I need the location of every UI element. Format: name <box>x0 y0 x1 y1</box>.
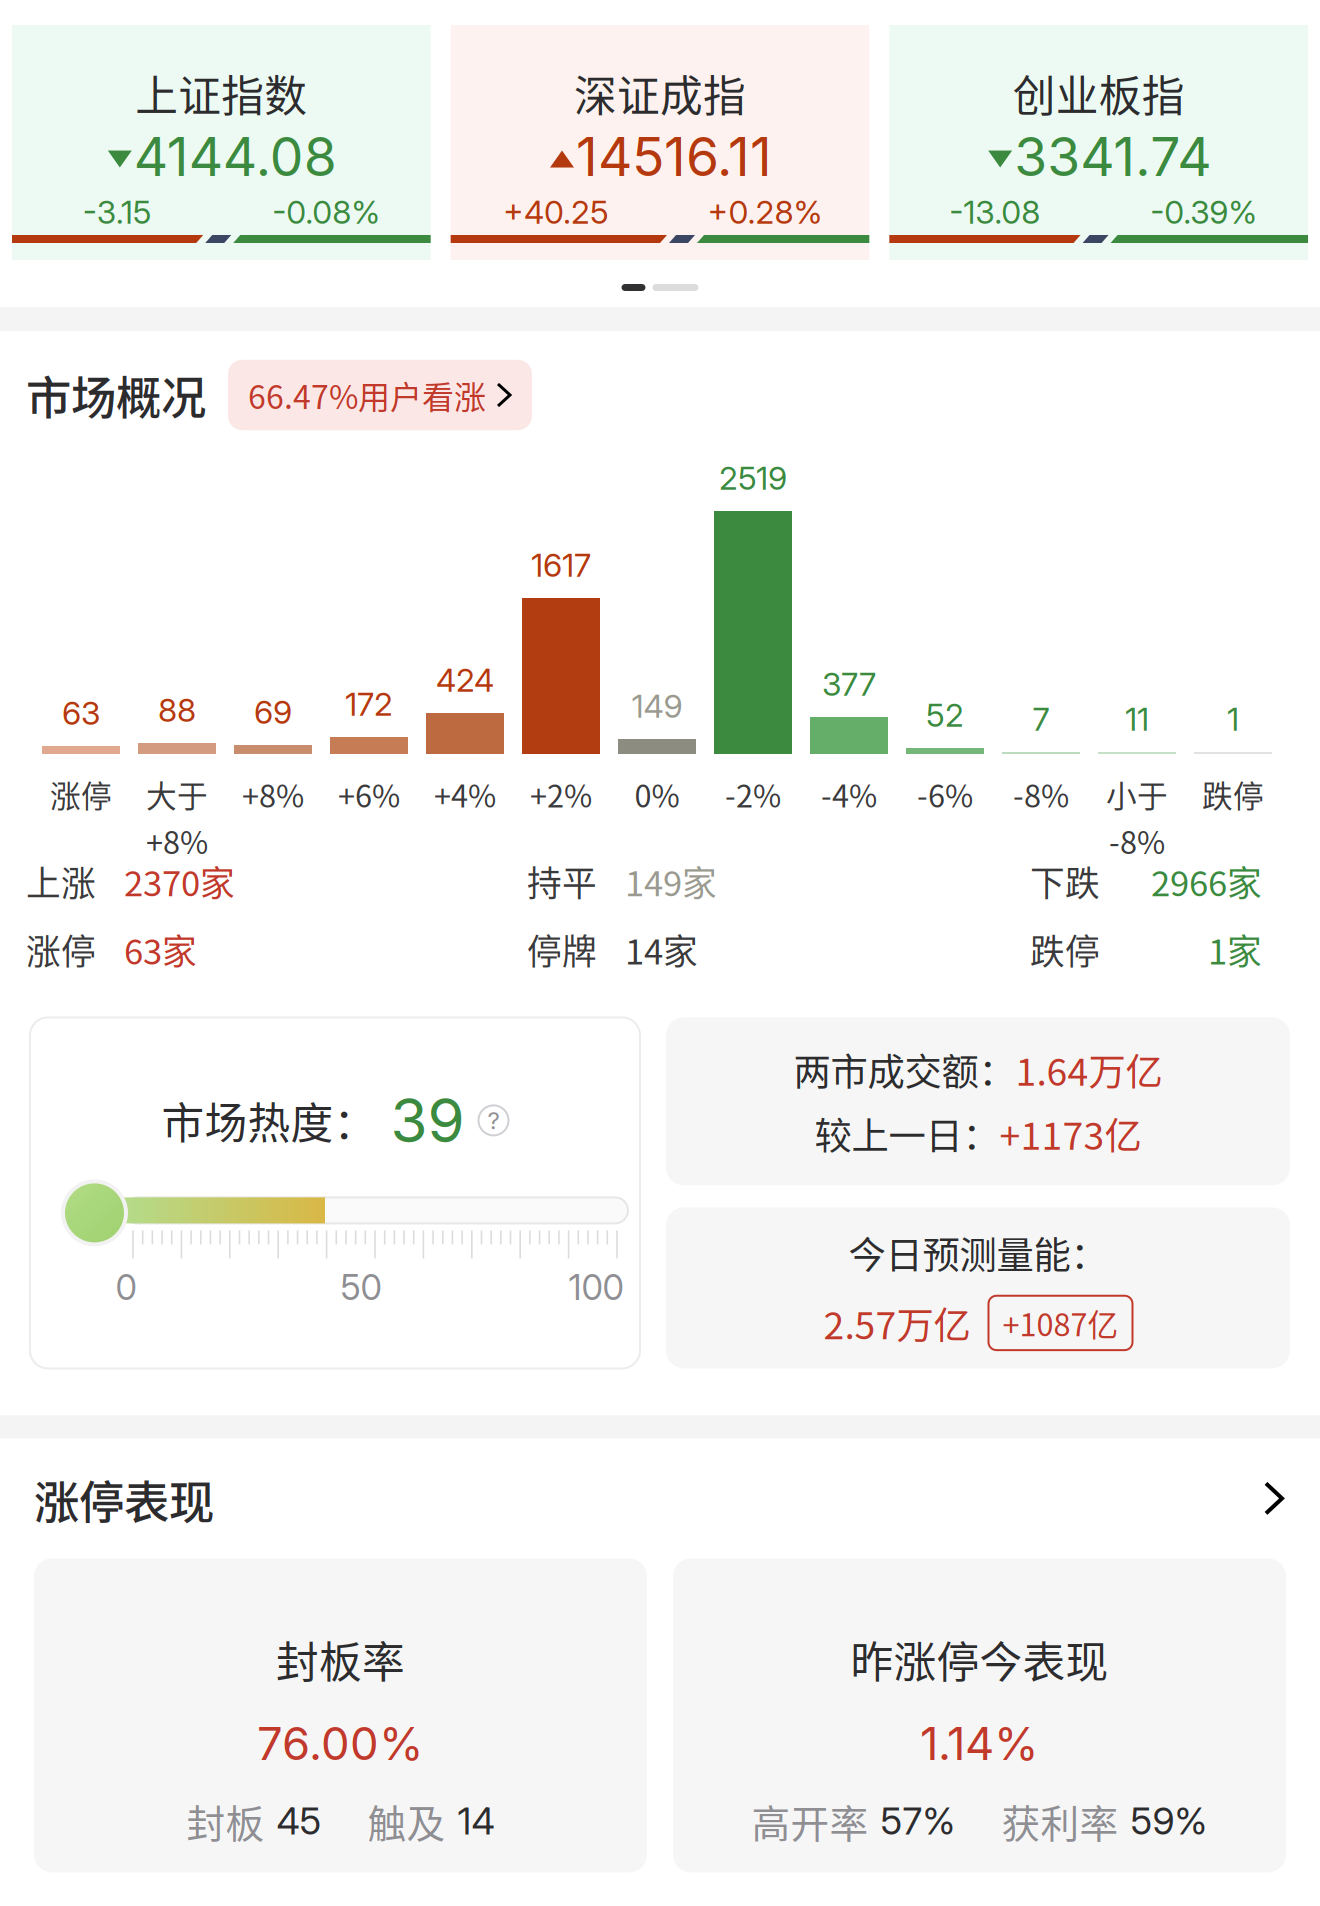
button[interactable]: 创业板指 <box>889 25 1308 260</box>
staticText: 76.00% <box>257 1716 424 1771</box>
staticText: 63家 <box>124 924 197 974</box>
staticText: 3341.74 <box>1014 124 1211 189</box>
staticText: 69 <box>254 693 292 731</box>
staticText: -8% <box>1109 818 1165 863</box>
staticText: -13.08 <box>949 193 1040 231</box>
button[interactable]: 上证指数 <box>12 25 431 260</box>
staticText: 持平 <box>527 856 597 906</box>
staticText: 较上一日： <box>814 1106 999 1160</box>
staticText: 45 <box>276 1798 321 1844</box>
staticText: -4% <box>821 772 877 816</box>
staticText: 涨停表现 <box>34 1467 214 1532</box>
staticText: 涨停 <box>50 772 112 816</box>
staticText: 1家 <box>1208 924 1262 974</box>
staticText: 封板率 <box>276 1628 405 1690</box>
staticText: -0.39% <box>1150 193 1257 231</box>
staticText: -3.15 <box>83 193 152 231</box>
staticText: 昨涨停今表现 <box>850 1628 1108 1690</box>
staticText: 获利率 <box>1001 1793 1118 1849</box>
staticText: 59% <box>1130 1798 1207 1844</box>
button[interactable]: 昨涨停今表现 <box>673 1558 1286 1872</box>
staticText: +4% <box>434 772 496 816</box>
staticText: 52 <box>926 696 964 734</box>
staticText: 39 <box>390 1084 464 1157</box>
staticText: 触及 <box>367 1793 445 1849</box>
staticText: 1.64万亿 <box>1015 1042 1162 1096</box>
button[interactable]: 66.47%用户看涨 <box>228 360 532 430</box>
staticText: +8% <box>242 772 304 816</box>
staticText: 50 <box>340 1266 381 1308</box>
staticText: -6% <box>917 772 973 816</box>
button[interactable]: 封板率 <box>34 1558 647 1872</box>
staticText: 创业板指 <box>1013 62 1185 124</box>
button[interactable]: 深证成指 <box>451 25 869 260</box>
staticText: 7 <box>1032 700 1049 738</box>
staticText: 2966家 <box>1151 856 1262 906</box>
staticText: 小于 <box>1106 772 1168 816</box>
staticText: 0 <box>115 1266 136 1308</box>
staticText: 市场热度： <box>161 1089 376 1151</box>
staticText: 上证指数 <box>135 62 307 124</box>
staticText: -8% <box>1013 772 1069 816</box>
staticText: -2% <box>725 772 781 816</box>
staticText: 149家 <box>625 856 717 906</box>
staticText: 封板 <box>186 1793 264 1849</box>
staticText: 涨停 <box>26 924 96 974</box>
staticText: 172 <box>345 685 393 723</box>
staticText: 57% <box>880 1798 955 1844</box>
staticText: +1173亿 <box>999 1106 1141 1160</box>
staticText: 63 <box>62 694 100 732</box>
staticText: 2.57万亿 <box>823 1296 970 1350</box>
staticText: 2370家 <box>124 856 235 906</box>
staticText: 市场概况 <box>26 362 206 428</box>
staticText: 424 <box>436 661 494 699</box>
staticText: 下跌 <box>1030 856 1100 906</box>
staticText: 大于 <box>146 772 208 816</box>
staticText: 0% <box>634 772 679 816</box>
staticText: 停牌 <box>527 924 597 974</box>
staticText: 上涨 <box>26 856 96 906</box>
staticText: 深证成指 <box>574 62 746 124</box>
staticText: 66.47%用户看涨 <box>248 372 486 418</box>
staticText: 88 <box>158 691 196 729</box>
staticText: 跌停 <box>1202 772 1264 816</box>
staticText: +8% <box>146 818 208 863</box>
staticText: 14 <box>457 1798 494 1844</box>
staticText: -0.08% <box>272 193 380 231</box>
staticText: ? <box>487 1106 499 1135</box>
staticText: 14516.11 <box>576 124 772 189</box>
staticText: 14家 <box>625 924 698 974</box>
staticText: 1617 <box>531 546 591 584</box>
staticText: 4144.08 <box>134 124 337 189</box>
staticText: 149 <box>631 687 682 725</box>
staticText: 跌停 <box>1030 924 1100 974</box>
staticText: 高开率 <box>751 1793 868 1849</box>
staticText: +0.28% <box>707 193 822 231</box>
staticText: 11 <box>1125 700 1149 738</box>
staticText: 1 <box>1227 700 1239 738</box>
button[interactable]: 涨停表现 <box>0 1438 1320 1558</box>
staticText: +40.25 <box>503 193 609 231</box>
staticText: 两市成交额： <box>793 1042 1015 1096</box>
staticText: +2% <box>530 772 592 816</box>
staticText: 2519 <box>719 459 787 497</box>
staticText: 377 <box>822 665 876 703</box>
staticText: +1087亿 <box>1002 1301 1118 1345</box>
staticText: 100 <box>568 1266 623 1308</box>
staticText: +6% <box>338 772 400 816</box>
staticText: 今日预测量能： <box>848 1226 1107 1280</box>
staticText: 1.14% <box>920 1716 1039 1771</box>
